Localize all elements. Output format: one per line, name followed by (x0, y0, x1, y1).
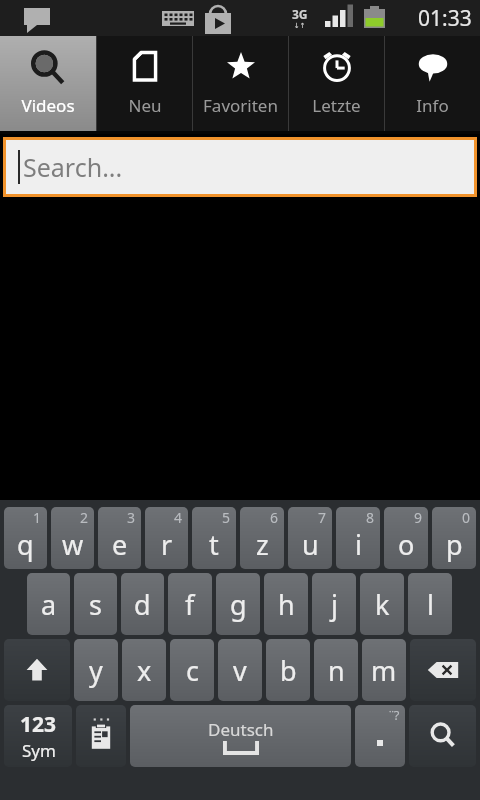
staticText: 0 (462, 508, 471, 527)
staticText: t (209, 526, 219, 563)
staticText: v (233, 652, 247, 689)
button[interactable]: 3 (98, 507, 141, 569)
staticText: Neu (128, 94, 162, 117)
staticText: s (89, 586, 102, 623)
staticText: 123 (20, 710, 57, 739)
staticText: 1 (33, 508, 42, 527)
button[interactable]: 7 (288, 507, 332, 569)
staticText: k (375, 586, 390, 623)
button[interactable]: x (122, 639, 166, 701)
button[interactable]: g (216, 573, 260, 635)
staticText: ↓↑ (294, 22, 306, 30)
staticText: g (230, 586, 247, 623)
button[interactable]: m (362, 639, 406, 701)
button[interactable]: 8 (336, 507, 380, 569)
staticText: 3G (292, 6, 308, 22)
button[interactable]: n (314, 639, 358, 701)
staticText: o (398, 526, 415, 563)
button[interactable]: Search (409, 705, 476, 767)
button[interactable]: c (170, 639, 214, 701)
button[interactable]: 5 (192, 507, 236, 569)
button[interactable]: Deutsch (130, 705, 351, 767)
button[interactable]: h (264, 573, 308, 635)
staticText: n (328, 652, 345, 689)
button[interactable]: Search... (6, 140, 474, 194)
button[interactable]: v (218, 639, 262, 701)
staticText: h (278, 586, 295, 623)
staticText: Deutsch (208, 718, 274, 741)
staticText: a (41, 586, 57, 623)
button[interactable]: a (27, 573, 70, 635)
staticText: y (89, 652, 103, 689)
button[interactable]: Letzte (289, 36, 384, 131)
staticText: w (62, 526, 84, 563)
button[interactable]: s (74, 573, 117, 635)
button[interactable]: 2 (51, 507, 94, 569)
staticText: c (186, 652, 199, 689)
staticText: 5 (222, 508, 231, 527)
staticText: e (112, 526, 128, 563)
button[interactable]: b (266, 639, 310, 701)
staticText: m (371, 652, 397, 689)
staticText: r (161, 526, 173, 563)
staticText: z (256, 526, 269, 563)
button[interactable]: Shift (4, 639, 70, 701)
button[interactable]: Clipboard (76, 705, 126, 767)
button[interactable]: Info (385, 36, 480, 131)
staticText: p (446, 526, 463, 563)
staticText: ˙˙? (389, 706, 400, 724)
button[interactable]: l (408, 573, 452, 635)
staticText: Search... (23, 150, 123, 184)
staticText: Sym (22, 739, 56, 762)
staticText: 4 (174, 508, 183, 527)
staticText: 7 (318, 508, 327, 527)
staticText: 01:33 (418, 4, 472, 33)
button[interactable]: j (312, 573, 356, 635)
button[interactable]: Neu (97, 36, 192, 131)
staticText: 8 (366, 508, 375, 527)
button[interactable]: ˙˙? (355, 705, 405, 767)
staticText: j (331, 586, 338, 623)
button[interactable]: d (121, 573, 164, 635)
staticText: 9 (414, 508, 423, 527)
button[interactable]: Videos (0, 36, 96, 131)
staticText: u (302, 526, 319, 563)
staticText: x (137, 652, 152, 689)
button[interactable]: f (168, 573, 212, 635)
staticText: i (355, 526, 362, 563)
staticText: Info (416, 94, 449, 117)
staticText: b (280, 652, 297, 689)
button[interactable]: 6 (240, 507, 284, 569)
button[interactable]: 123 (4, 705, 72, 767)
button[interactable]: 4 (145, 507, 188, 569)
button[interactable]: Backspace (410, 639, 476, 701)
button[interactable]: Favoriten (193, 36, 288, 131)
button[interactable]: 0 (432, 507, 476, 569)
staticText: q (17, 526, 34, 563)
staticText: Favoriten (203, 94, 278, 117)
staticText: 6 (270, 508, 279, 527)
staticText: 3 (127, 508, 136, 527)
button[interactable]: k (360, 573, 404, 635)
button[interactable]: 9 (384, 507, 428, 569)
staticText: Videos (21, 94, 75, 117)
button[interactable]: y (74, 639, 118, 701)
staticText: l (427, 586, 434, 623)
staticText: d (134, 586, 151, 623)
staticText: 2 (80, 508, 89, 527)
staticText: Letzte (312, 94, 361, 117)
button[interactable]: 1 (4, 507, 47, 569)
staticText: f (185, 586, 195, 623)
